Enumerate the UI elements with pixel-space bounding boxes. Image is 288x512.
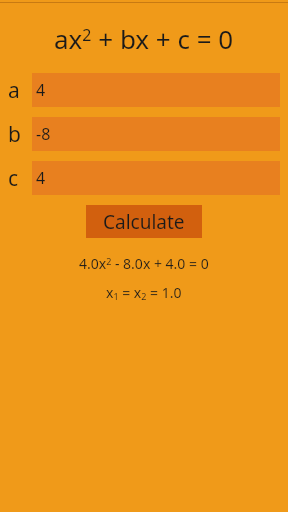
staticText: ax2 + bx + c = 0 xyxy=(54,21,234,56)
staticText: a xyxy=(8,76,20,105)
button[interactable]: -8 xyxy=(32,117,280,151)
staticText: Calculate xyxy=(103,209,185,235)
staticText: 4.0x2 - 8.0x + 4.0 = 0 xyxy=(79,254,209,273)
staticText: b xyxy=(8,120,21,149)
button[interactable]: Calculate xyxy=(86,205,202,238)
staticText: x1 = x2 = 1.0 xyxy=(106,283,182,303)
staticText: 4 xyxy=(36,167,46,189)
button[interactable]: 4 xyxy=(32,161,280,195)
button[interactable]: 4 xyxy=(32,73,280,107)
staticText: -8 xyxy=(36,123,51,145)
staticText: 4 xyxy=(36,79,46,101)
staticText: c xyxy=(8,164,19,193)
